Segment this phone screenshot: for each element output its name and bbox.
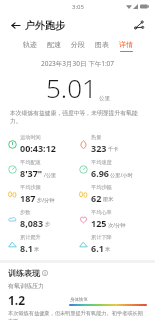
staticText: 轨迹 — [23, 40, 37, 49]
staticText: 运动时间 — [20, 134, 41, 141]
button[interactable]: 平均步频 — [8, 184, 79, 204]
staticText: 8.1 — [20, 242, 33, 254]
button[interactable]: 步数 — [8, 209, 79, 229]
button[interactable]: Back — [6, 16, 24, 34]
staticText: 训练表现 — [8, 268, 40, 278]
other: Info — [42, 270, 48, 276]
staticText: 00:43:12 — [20, 142, 56, 154]
staticText: 图表 — [95, 40, 109, 49]
staticText: 次/分钟 — [108, 221, 126, 228]
button[interactable]: 训练表现 — [8, 268, 48, 278]
button[interactable]: Share — [130, 16, 148, 34]
button[interactable]: 平均速度 — [79, 159, 151, 179]
staticText: 平均步频 — [20, 184, 41, 191]
staticText: 分段 — [71, 40, 85, 49]
staticText: 米 — [105, 246, 111, 253]
staticText: 1.2 — [8, 292, 26, 308]
staticText: 平均速度 — [91, 159, 112, 166]
staticText: 步数 — [20, 209, 31, 216]
staticText: 户外跑步 — [25, 19, 65, 32]
staticText: 6.1 — [91, 242, 104, 254]
staticText: 身体恢复 — [70, 297, 88, 303]
button[interactable]: 轨迹 — [23, 40, 37, 52]
button[interactable]: 累计下降 — [79, 234, 151, 254]
staticText: 平均心率 — [91, 209, 112, 216]
staticText: 配速 — [47, 40, 61, 49]
staticText: 累计爬升 — [20, 234, 41, 241]
button[interactable]: 累计爬升 — [8, 234, 79, 254]
button[interactable]: 平均心率 — [79, 209, 151, 229]
button[interactable]: 平均配速 — [8, 159, 79, 179]
staticText: 热量 — [91, 134, 102, 141]
staticText: 厘米 — [103, 196, 114, 203]
staticText: 累计下降 — [91, 234, 112, 241]
button[interactable]: 详情 — [119, 40, 133, 52]
staticText: 步/分钟 — [37, 196, 55, 203]
staticText: 平均配速 — [20, 159, 41, 166]
staticText: 有氧训练压力 — [8, 282, 44, 290]
staticText: /公里 — [44, 171, 57, 178]
button[interactable]: 配速 — [47, 40, 61, 52]
staticText: 2023年3月30日 下午1:07 — [0, 59, 155, 68]
staticText: 本次锻炼有益健康，强度中等，未明显提升有氧能力。 — [10, 109, 145, 125]
staticText: 5.01 — [46, 70, 97, 105]
staticText: 8'37" — [20, 167, 43, 179]
button[interactable]: 运动时间 — [8, 134, 79, 154]
staticText: 公里 — [99, 95, 110, 102]
staticText: 62 — [91, 192, 102, 204]
button[interactable]: 平均步幅 — [79, 184, 151, 204]
staticText: 187 — [20, 192, 36, 204]
button[interactable]: 分段 — [71, 40, 85, 52]
staticText: 8,083 — [20, 217, 44, 229]
staticText: 3:05 — [72, 3, 84, 11]
staticText: 千卡 — [108, 146, 119, 153]
staticText: 125 — [91, 217, 107, 229]
staticText: 公里/小时 — [110, 171, 133, 178]
staticText: 本次锻炼有益健康，但未明显提升有氧能力。初学者或长期中断 锻炼的用户，可以从低强… — [8, 310, 147, 320]
button[interactable]: 热量 — [79, 134, 151, 154]
staticText: 6.96 — [91, 167, 109, 179]
staticText: 步 — [45, 221, 51, 228]
staticText: 323 — [91, 142, 107, 154]
staticText: 平均步幅 — [91, 184, 112, 191]
staticText: 米 — [34, 246, 40, 253]
staticText: 详情 — [119, 40, 133, 49]
button[interactable]: 图表 — [95, 40, 109, 52]
